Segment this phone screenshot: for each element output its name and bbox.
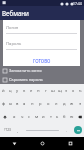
staticText: , xyxy=(17,128,19,133)
staticText: 17:44 xyxy=(73,1,82,6)
staticText: ч xyxy=(21,114,24,120)
staticText: м xyxy=(35,114,39,120)
staticText: х xyxy=(72,88,75,94)
button[interactable]: ь xyxy=(54,110,61,123)
staticText: т xyxy=(50,114,52,120)
button[interactable]: ю xyxy=(68,110,75,123)
staticText: Вебмани xyxy=(2,9,29,17)
button[interactable]: Backspace xyxy=(75,110,84,123)
button[interactable]: ш xyxy=(49,84,56,97)
button[interactable]: в xyxy=(14,97,21,110)
button[interactable]: Скрывать пароль xyxy=(3,77,43,82)
staticText: ж xyxy=(70,101,74,107)
staticText: я xyxy=(13,114,16,120)
button[interactable]: Enter xyxy=(71,123,84,137)
button[interactable]: Back xyxy=(0,137,28,150)
button[interactable]: э xyxy=(76,97,84,110)
button[interactable]: з xyxy=(63,84,70,97)
button[interactable]: н xyxy=(35,84,42,97)
button[interactable]: о xyxy=(44,97,52,110)
button[interactable]: т xyxy=(47,110,54,123)
button[interactable]: ж xyxy=(68,97,76,110)
button[interactable]: Recents xyxy=(56,137,84,150)
button[interactable]: й xyxy=(0,84,7,97)
button[interactable]: р xyxy=(36,97,44,110)
staticText: а xyxy=(23,101,26,107)
staticText: Пароль xyxy=(6,41,22,47)
staticText: ф xyxy=(2,101,6,107)
staticText: ш xyxy=(51,88,55,94)
button[interactable]: е xyxy=(28,84,35,97)
button[interactable]: ы xyxy=(7,97,14,110)
button[interactable]: а xyxy=(21,97,28,110)
staticText: в xyxy=(16,101,19,107)
button[interactable]: х xyxy=(70,84,77,97)
staticText: ?123 xyxy=(4,128,11,132)
staticText: и xyxy=(42,114,45,120)
button[interactable]: ц xyxy=(7,84,14,97)
staticText: ъ xyxy=(79,88,82,94)
button[interactable]: ?123 xyxy=(0,123,14,137)
button[interactable]: ч xyxy=(18,110,26,123)
button[interactable]: п xyxy=(28,97,36,110)
staticText: щ xyxy=(58,88,62,94)
button[interactable]: м xyxy=(33,110,40,123)
staticText: Логин xyxy=(6,25,19,31)
button[interactable]: с xyxy=(26,110,33,123)
button[interactable]: ГОТОВО xyxy=(6,58,77,64)
button[interactable]: я xyxy=(10,110,18,123)
button[interactable]: Запомнить меня xyxy=(3,68,42,73)
staticText: ы xyxy=(9,101,13,107)
button[interactable]: ъ xyxy=(77,84,84,97)
staticText: ю xyxy=(70,114,74,120)
button[interactable]: у xyxy=(14,84,21,97)
staticText: у xyxy=(16,88,19,94)
staticText: й xyxy=(2,88,5,94)
button[interactable]: к xyxy=(21,84,28,97)
staticText: д xyxy=(63,101,66,107)
staticText: с xyxy=(28,114,31,120)
staticText: р xyxy=(39,101,42,107)
button[interactable]: и xyxy=(40,110,47,123)
staticText: н xyxy=(37,88,40,94)
staticText: л xyxy=(55,101,58,107)
staticText: г xyxy=(45,88,47,94)
button[interactable]: Home xyxy=(28,137,56,150)
staticText: . xyxy=(66,128,68,133)
button[interactable] xyxy=(22,123,63,137)
button[interactable]: б xyxy=(61,110,68,123)
button[interactable]: д xyxy=(60,97,68,110)
staticText: э xyxy=(79,101,82,107)
staticText: о xyxy=(47,101,50,107)
staticText: е xyxy=(30,88,33,94)
other: Enter xyxy=(74,126,82,134)
button[interactable]: г xyxy=(42,84,49,97)
button[interactable]: ф xyxy=(0,97,7,110)
staticText: ГОТОВО xyxy=(33,58,51,64)
button[interactable]: Shift xyxy=(0,110,10,123)
staticText: п xyxy=(31,101,34,107)
button[interactable]: щ xyxy=(56,84,63,97)
staticText: ь xyxy=(56,114,59,120)
button[interactable]: , xyxy=(14,123,22,137)
staticText: Запомнить меня xyxy=(9,68,42,73)
staticText: к xyxy=(23,88,26,94)
staticText: з xyxy=(65,88,68,94)
staticText: Скрывать пароль xyxy=(9,77,43,82)
staticText: б xyxy=(63,114,66,120)
staticText: ц xyxy=(9,88,12,94)
button[interactable]: л xyxy=(52,97,60,110)
